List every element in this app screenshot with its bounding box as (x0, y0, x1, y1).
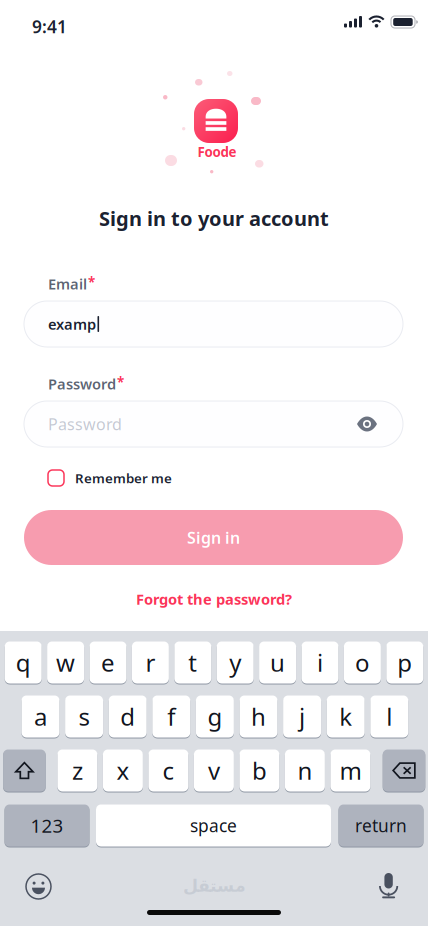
button[interactable]: i (301, 641, 338, 684)
button[interactable]: q (5, 641, 42, 684)
button[interactable]: Sign in (24, 510, 403, 565)
button[interactable]: j (283, 695, 321, 738)
staticText: f (167, 701, 175, 732)
button[interactable]: s (65, 695, 103, 738)
staticText: q (16, 647, 31, 678)
staticText: Foode (197, 143, 236, 161)
button[interactable]: k (327, 695, 365, 738)
button[interactable]: Emoji keyboard (25, 873, 52, 900)
staticText: * (88, 273, 95, 291)
staticText: g (207, 701, 222, 732)
staticText: l (386, 701, 392, 732)
button[interactable]: p (386, 641, 423, 684)
button[interactable]: v (194, 749, 234, 792)
button[interactable]: c (148, 749, 188, 792)
staticText: Sign in to your account (99, 205, 329, 232)
staticText: v (208, 755, 220, 786)
staticText: w (56, 647, 75, 678)
button[interactable]: Forgot the password? (0, 589, 428, 609)
button[interactable]: a (21, 695, 59, 738)
staticText: x (116, 755, 129, 786)
staticText: d (120, 701, 135, 732)
staticText: y (229, 647, 241, 678)
staticText: r (145, 647, 155, 678)
staticText: t (188, 647, 197, 678)
staticText: k (339, 701, 352, 732)
button[interactable]: Show password (349, 406, 385, 442)
staticText: u (270, 647, 285, 678)
staticText: s (79, 701, 90, 732)
button[interactable]: h (239, 695, 277, 738)
button[interactable]: r (132, 641, 169, 684)
button[interactable]: space (96, 804, 331, 847)
staticText: Forgot the password? (136, 589, 292, 609)
staticText: b (252, 755, 267, 786)
staticText: z (72, 755, 83, 786)
staticText: مستقل (182, 876, 245, 896)
staticText: c (162, 755, 174, 786)
staticText: n (297, 755, 312, 786)
staticText: Sign in (187, 527, 240, 548)
button[interactable]: m (330, 749, 370, 792)
button[interactable]: y (217, 641, 254, 684)
button[interactable]: w (47, 641, 84, 684)
staticText: h (251, 701, 266, 732)
button[interactable]: Remember me (48, 467, 172, 489)
staticText: Email (48, 274, 87, 293)
staticText: i (317, 647, 323, 678)
staticText: p (397, 647, 412, 678)
staticText: Remember me (75, 469, 172, 487)
staticText: * (117, 373, 124, 391)
staticText: j (299, 701, 305, 732)
button[interactable]: t (174, 641, 211, 684)
button[interactable]: Delete (383, 749, 425, 792)
staticText: e (101, 647, 115, 678)
staticText: Password (48, 374, 116, 393)
button[interactable]: e (89, 641, 126, 684)
staticText: a (34, 701, 47, 732)
staticText: space (190, 814, 237, 837)
button[interactable]: n (285, 749, 325, 792)
button[interactable]: b (239, 749, 279, 792)
button[interactable]: g (196, 695, 234, 738)
button[interactable]: z (57, 749, 97, 792)
button[interactable]: d (109, 695, 147, 738)
button[interactable]: return (338, 804, 423, 847)
button[interactable]: o (344, 641, 381, 684)
button[interactable]: u (259, 641, 296, 684)
staticText: 9:41 (32, 15, 67, 38)
staticText: examp (48, 314, 96, 334)
button[interactable]: 123 (4, 804, 89, 847)
staticText: o (355, 647, 370, 678)
staticText: m (339, 755, 361, 786)
button[interactable]: Shift (3, 749, 46, 792)
button[interactable]: Dictation (379, 873, 398, 899)
staticText: 123 (30, 813, 63, 838)
button[interactable]: l (370, 695, 408, 738)
staticText: return (355, 814, 407, 837)
staticText: Password (48, 413, 122, 435)
button[interactable]: f (152, 695, 190, 738)
button[interactable]: x (103, 749, 143, 792)
